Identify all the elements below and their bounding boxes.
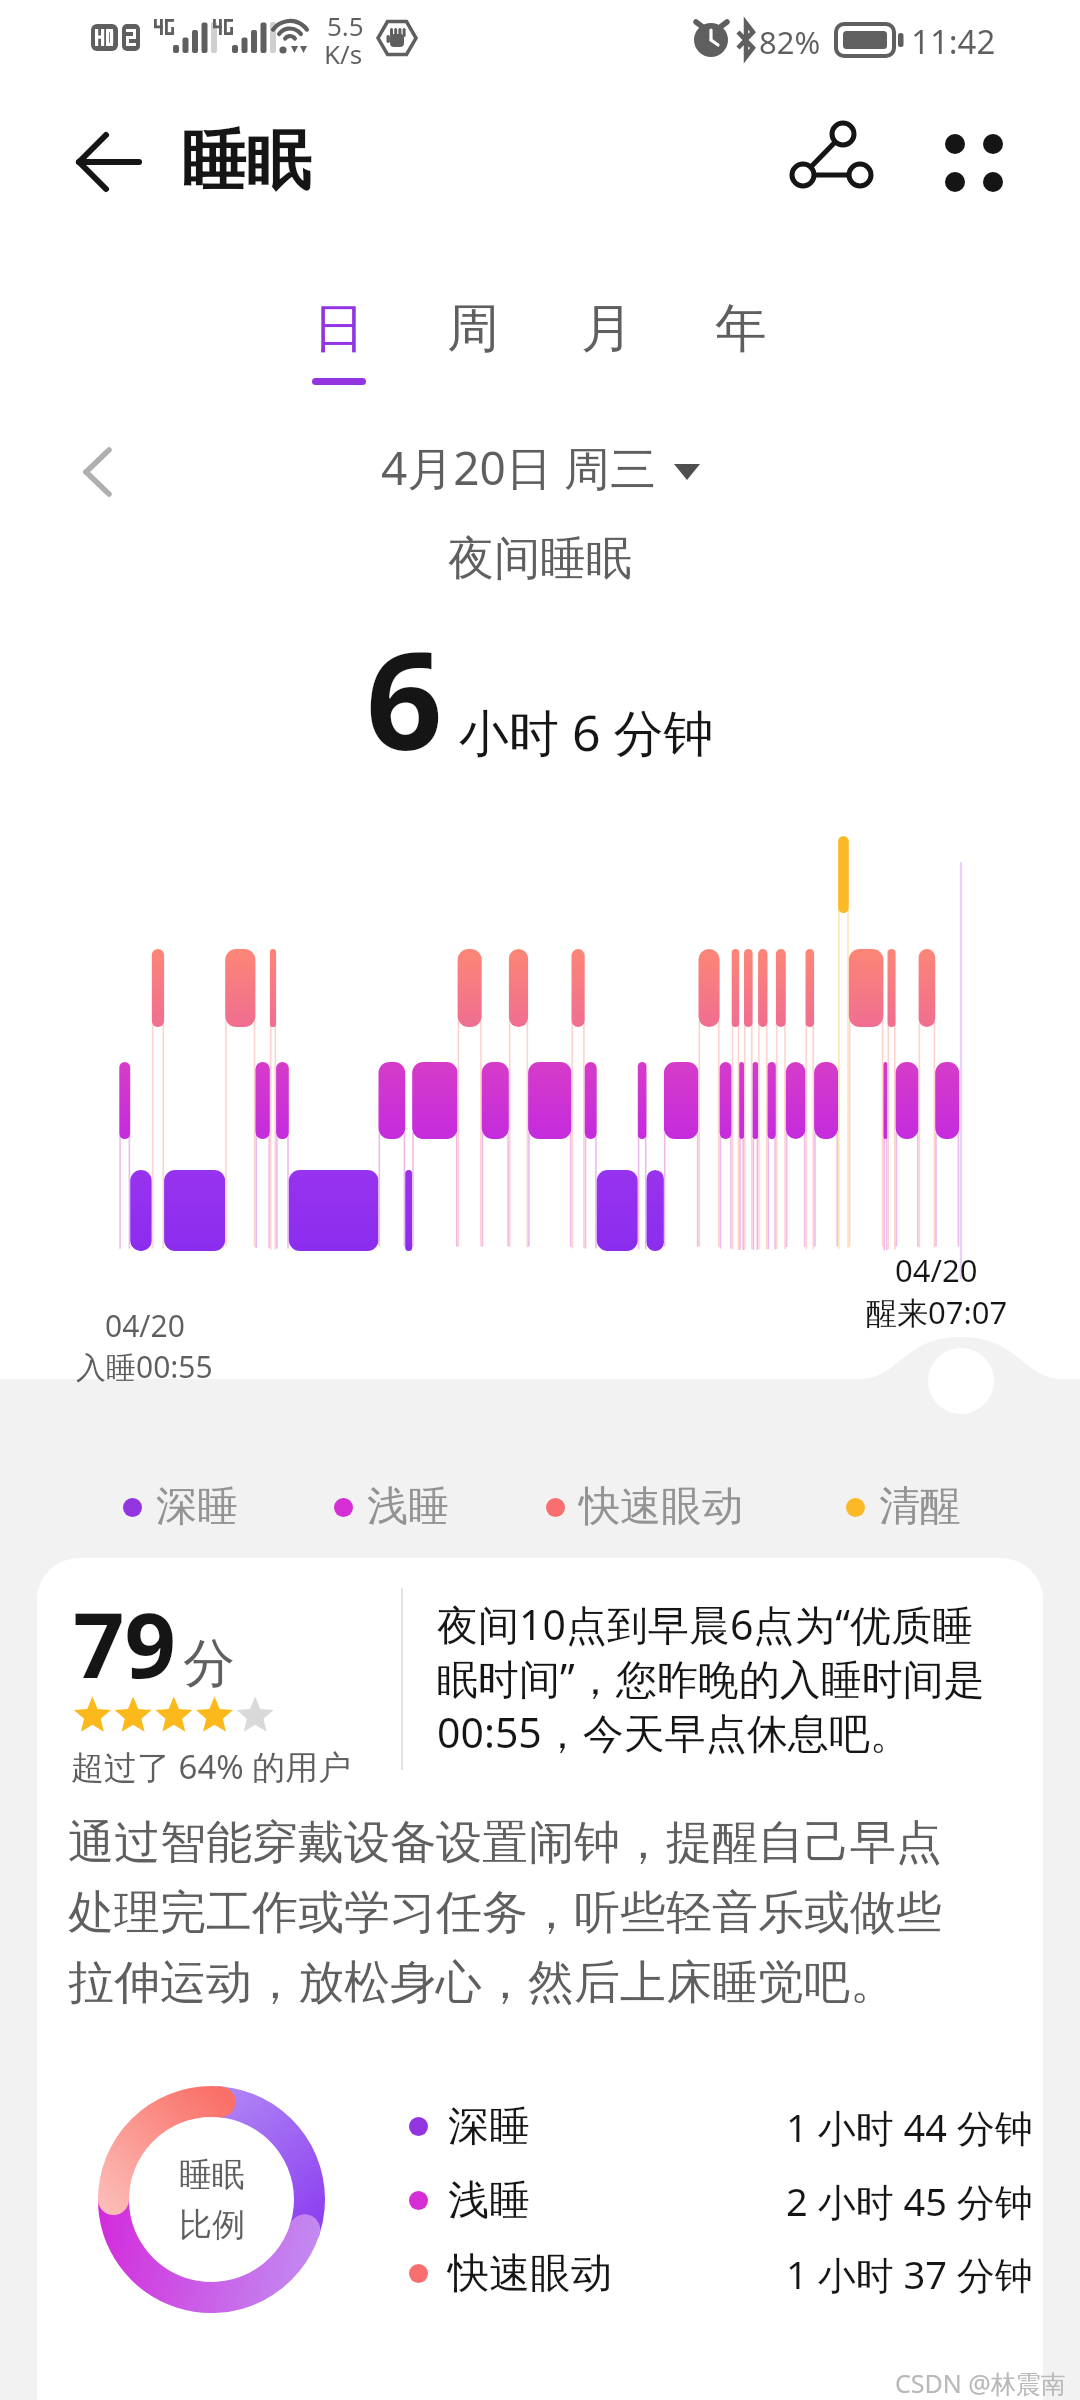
staticText: 4月20日 周三	[381, 436, 656, 499]
staticText: 入睡00:55	[76, 1346, 213, 1387]
staticText: 清醒	[879, 1481, 961, 1533]
button[interactable]: 浅睡	[334, 1475, 449, 1539]
button[interactable]: Expand	[927, 1347, 995, 1415]
staticText: 82%	[759, 21, 821, 63]
button[interactable]: 4月20日 周三	[373, 430, 708, 505]
staticText: 年	[715, 296, 767, 362]
staticText: 快速眼动	[579, 1481, 743, 1533]
staticText: 1 小时 44 分钟	[786, 2101, 1033, 2153]
button[interactable]: More options	[915, 102, 1025, 212]
staticText: 6	[366, 607, 443, 790]
staticText: 11:42	[911, 19, 996, 64]
staticText: 04/20	[895, 1249, 978, 1291]
staticText: 79	[73, 1582, 176, 1705]
staticText: 夜间睡眠	[448, 530, 632, 588]
button[interactable]: 深睡	[123, 1475, 238, 1539]
staticText: K/s	[324, 36, 363, 71]
staticText: 夜间10点到早晨6点为“优质睡眠时间”，您昨晚的入睡时间是00:55，今天早点休…	[437, 1596, 1005, 1760]
staticText: 5.5	[327, 8, 364, 43]
staticText: 醒来07:07	[866, 1291, 1008, 1333]
staticText: 月	[581, 296, 633, 362]
staticText: 通过智能穿戴设备设置闹钟，提醒自己早点处理完工作或学习任务，听些轻音乐或做些拉伸…	[68, 1814, 961, 2012]
staticText: 超过了 64% 的用户	[71, 1744, 352, 1789]
button[interactable]: 周	[413, 296, 533, 406]
button[interactable]: 浅睡	[409, 2164, 1033, 2237]
button[interactable]: 快速眼动	[409, 2237, 1033, 2310]
staticText: 周	[447, 296, 499, 362]
button[interactable]: 深睡	[409, 2090, 1033, 2163]
staticText: 日	[313, 296, 365, 362]
button[interactable]: 月	[547, 296, 667, 406]
staticText: 快速眼动	[448, 2248, 612, 2300]
button[interactable]: Share	[775, 102, 885, 212]
button[interactable]: Back	[48, 102, 158, 212]
staticText: 04/20	[105, 1305, 185, 1346]
staticText: 2 小时 45 分钟	[786, 2175, 1033, 2227]
staticText: 深睡	[156, 1481, 238, 1533]
other: Sleep details	[0, 0, 1080, 2400]
staticText: CSDN @林震南	[895, 2366, 1066, 2400]
staticText: 浅睡	[367, 1481, 449, 1533]
staticText: 浅睡	[448, 2175, 530, 2227]
staticText: 睡眠	[181, 120, 311, 202]
button[interactable]: Previous day	[57, 428, 145, 516]
staticText: 小时 6 分钟	[459, 698, 714, 766]
button[interactable]: 年	[681, 296, 801, 406]
button[interactable]: 快速眼动	[546, 1475, 743, 1539]
staticText: 深睡	[448, 2101, 530, 2153]
button[interactable]: 日	[279, 296, 399, 406]
staticText: 睡眠	[179, 2154, 245, 2196]
staticText: 分	[183, 1631, 235, 1697]
staticText: 1 小时 37 分钟	[786, 2248, 1033, 2300]
staticText: 比例	[179, 2204, 245, 2246]
button[interactable]: 清醒	[846, 1475, 961, 1539]
